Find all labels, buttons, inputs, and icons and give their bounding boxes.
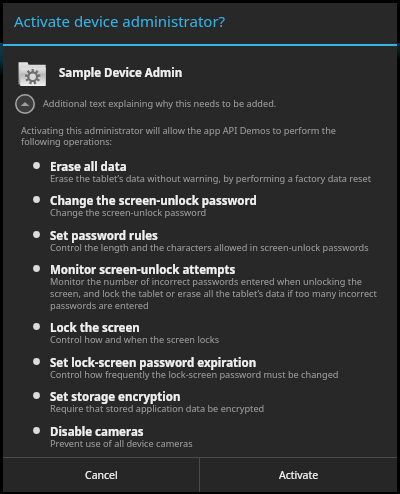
staticText: Disable cameras (50, 424, 144, 440)
staticText: Control how and when the screen locks (50, 334, 382, 346)
staticText: Set storage encryption (50, 389, 181, 405)
staticText: Lock the screen (50, 320, 140, 336)
staticText: Monitor the number of incorrect password… (50, 276, 382, 312)
button[interactable]: Collapse details (10, 91, 391, 116)
button[interactable]: Activate (200, 458, 397, 492)
button[interactable]: Set password rules (14, 224, 392, 256)
staticText: Activating this administrator will allow… (21, 126, 369, 148)
button[interactable]: Erase all data (14, 155, 392, 187)
staticText: Erase all data (50, 159, 127, 175)
staticText: Cancel (85, 468, 118, 482)
button[interactable]: Change the screen-unlock password (14, 189, 392, 221)
button[interactable]: Cancel (3, 458, 199, 492)
other: Collapse details (14, 93, 36, 115)
staticText: Activate (279, 468, 319, 482)
staticText: Set lock-screen password expiration (50, 355, 257, 371)
staticText: Change the screen-unlock password (50, 193, 257, 209)
staticText: Set password rules (50, 228, 158, 244)
staticText: Control how frequently the lock-screen p… (50, 369, 382, 381)
staticText: Control the length and the characters al… (50, 242, 382, 254)
staticText: Require that stored application data be … (50, 403, 382, 415)
button[interactable]: Monitor screen-unlock attempts (14, 258, 392, 313)
staticText: Activate device administrator? (14, 11, 226, 31)
button[interactable]: Set lock-screen password expiration (14, 351, 392, 383)
staticText: Erase the tablet’s data without warning,… (50, 173, 382, 185)
staticText: Change the screen-unlock password (50, 207, 382, 219)
staticText: Monitor screen-unlock attempts (50, 262, 236, 278)
button[interactable]: Lock the screen (14, 316, 392, 348)
staticText: Sample Device Admin (59, 65, 183, 81)
staticText: Prevent use of all device cameras (50, 438, 382, 450)
staticText: Additional text explaining why this need… (43, 97, 277, 110)
button[interactable]: Disable cameras (14, 420, 392, 452)
button[interactable]: Set storage encryption (14, 385, 392, 417)
